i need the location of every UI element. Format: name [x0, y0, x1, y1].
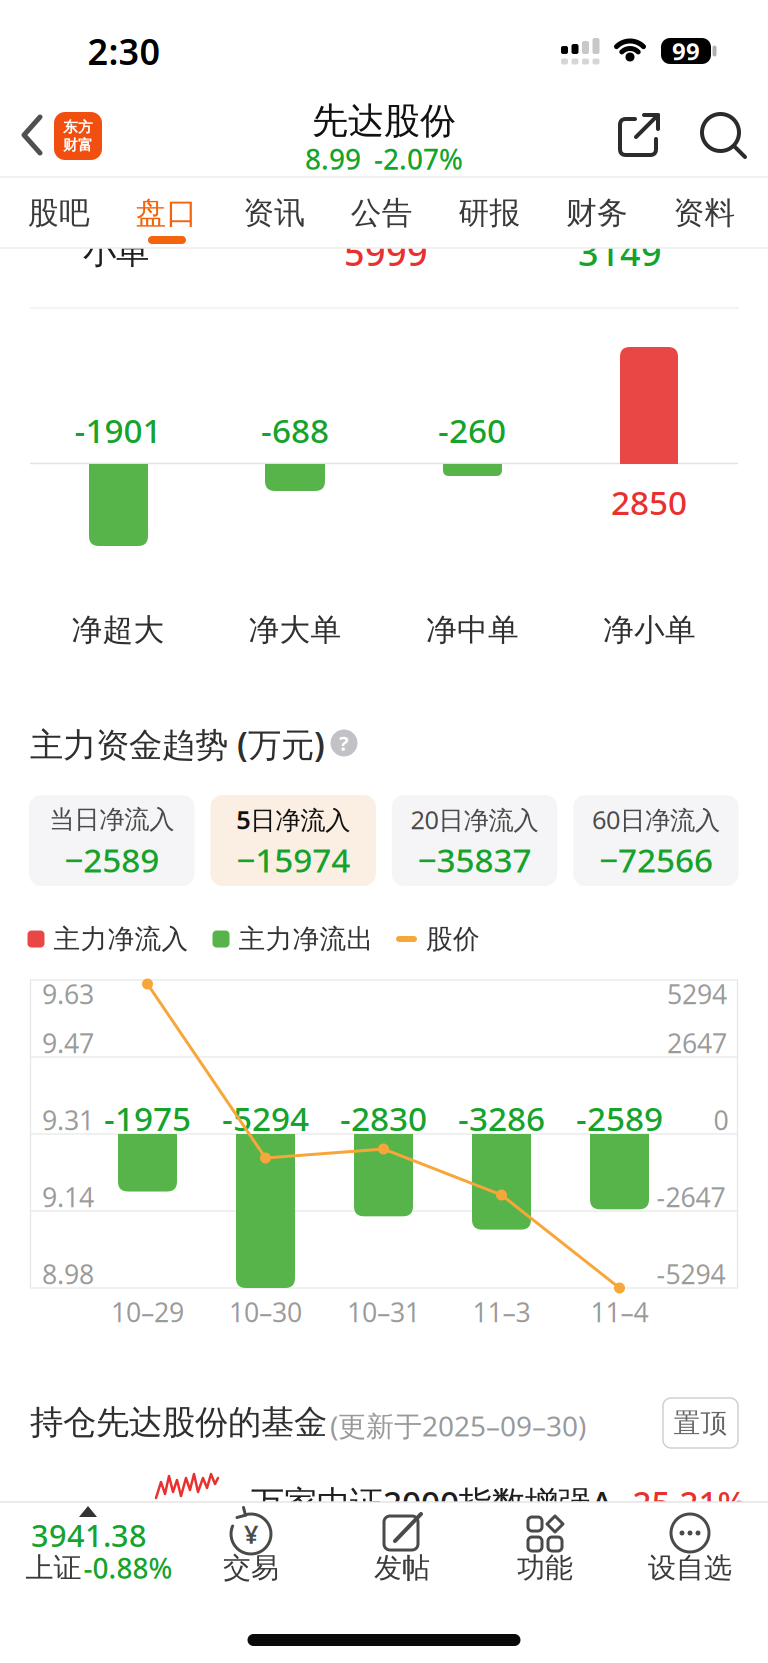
staticText: -2647 [656, 1179, 725, 1215]
button[interactable]: 资讯 [224, 180, 324, 246]
staticText: 财富 [63, 136, 93, 154]
button[interactable]: 公告 [332, 180, 432, 246]
staticText: -1975 [104, 1096, 191, 1140]
button[interactable] [618, 113, 662, 159]
staticText: 3941.38 [31, 1515, 147, 1555]
staticText: -5294 [222, 1096, 309, 1140]
staticText: 资料 [674, 194, 736, 232]
staticText: 盘口 [136, 194, 198, 232]
staticText: -1901 [74, 408, 161, 452]
staticText: 3149 [578, 228, 662, 276]
staticText: -260 [438, 408, 506, 452]
staticText: 净中单 [426, 611, 519, 649]
staticText: 发帖 [374, 1551, 430, 1585]
staticText: 20日净流入 [411, 803, 539, 836]
staticText: 2647 [667, 1025, 727, 1061]
button[interactable]: 设自选 [640, 1514, 740, 1586]
staticText: 11–3 [472, 1294, 530, 1330]
staticText: 5294 [667, 976, 727, 1012]
staticText: 持仓先达股份的基金 [30, 1402, 327, 1443]
staticText: 8.99 [305, 140, 361, 178]
staticText: -3286 [458, 1096, 545, 1140]
staticText: 11–4 [590, 1294, 648, 1330]
staticText: 功能 [517, 1551, 573, 1585]
staticText: 净大单 [248, 611, 341, 649]
staticText: 财务 [566, 194, 628, 232]
button[interactable]: 发帖 [352, 1514, 452, 1586]
staticText: 股吧 [28, 194, 90, 232]
button[interactable] [701, 113, 747, 159]
staticText: 60日净流入 [592, 803, 720, 836]
button[interactable]: 置顶 [663, 1398, 738, 1448]
staticText: −35837 [418, 837, 532, 882]
staticText: 交易 [223, 1551, 279, 1585]
button[interactable]: 万家中证2000指数增强A [0, 1468, 768, 1558]
staticText: 上证 [25, 1551, 81, 1585]
button[interactable]: 股吧 [9, 180, 109, 246]
staticText: ? [339, 730, 349, 756]
staticText: −2589 [64, 837, 159, 882]
button[interactable]: 功能 [495, 1514, 595, 1586]
staticText: 9.31 [42, 1102, 94, 1138]
staticText: -2589 [576, 1096, 663, 1140]
button[interactable]: ¥ [201, 1514, 301, 1586]
staticText: 净超大 [71, 611, 164, 649]
staticText: ¥ [244, 1517, 258, 1551]
button[interactable]: 研报 [439, 180, 539, 246]
staticText: 小单 [83, 231, 149, 272]
staticText: 2850 [611, 480, 687, 524]
staticText: 2:30 [87, 27, 160, 75]
button[interactable]: 盘口 [117, 180, 217, 246]
staticText: 研报 [458, 194, 520, 232]
staticText: 万家中证2000指数增强A [251, 1480, 613, 1524]
staticText: 10–31 [347, 1294, 420, 1330]
staticText: 资讯 [243, 194, 305, 232]
button[interactable]: 3941.38 [10, 1504, 190, 1590]
staticText: 净小单 [603, 611, 696, 649]
button[interactable]: 60日净流入 [573, 795, 739, 886]
staticText: 设自选 [648, 1551, 732, 1585]
staticText: 9.47 [42, 1025, 94, 1061]
staticText: 主力净流入 [53, 923, 188, 955]
staticText: -5294 [656, 1256, 725, 1292]
staticText: 5日净流入 [236, 803, 350, 836]
staticText: 置顶 [673, 1407, 727, 1439]
staticText: 10–30 [229, 1294, 302, 1330]
staticText: 9.63 [42, 976, 94, 1012]
staticText: 5999 [344, 228, 428, 276]
staticText: 先达股份 [312, 99, 456, 143]
staticText: 主力资金趋势 (万元) [30, 722, 325, 766]
button[interactable]: 财务 [547, 180, 647, 246]
staticText: 99 [672, 35, 700, 67]
button[interactable]: 20日净流入 [392, 795, 557, 886]
staticText: −15974 [236, 837, 350, 882]
staticText: -2830 [340, 1096, 427, 1140]
staticText: 10–29 [111, 1294, 184, 1330]
button[interactable]: 小单 [0, 220, 768, 290]
staticText: -2.07% [374, 140, 463, 178]
staticText: (更新于2025–09–30) [330, 1407, 586, 1444]
staticText: 9.14 [42, 1179, 94, 1215]
staticText: 公告 [351, 194, 413, 232]
staticText: -0.88% [83, 1549, 172, 1587]
staticText: 0 [713, 1102, 728, 1138]
staticText: 股价 [426, 923, 480, 955]
button[interactable]: ? [330, 729, 358, 757]
button[interactable]: 资料 [655, 180, 755, 246]
button[interactable]: 5日净流入 [210, 795, 376, 886]
staticText: 当日净流入 [49, 804, 174, 835]
staticText: 8.98 [42, 1256, 94, 1292]
button[interactable] [9, 105, 55, 165]
staticText: -688 [261, 408, 329, 452]
staticText: 东方 [63, 118, 93, 136]
staticText: 主力净流出 [238, 923, 373, 955]
staticText: −72566 [599, 837, 713, 882]
staticText: 25.21% [632, 1480, 745, 1524]
button[interactable]: 当日净流入 [29, 795, 194, 886]
button[interactable]: 东方 [54, 112, 102, 160]
